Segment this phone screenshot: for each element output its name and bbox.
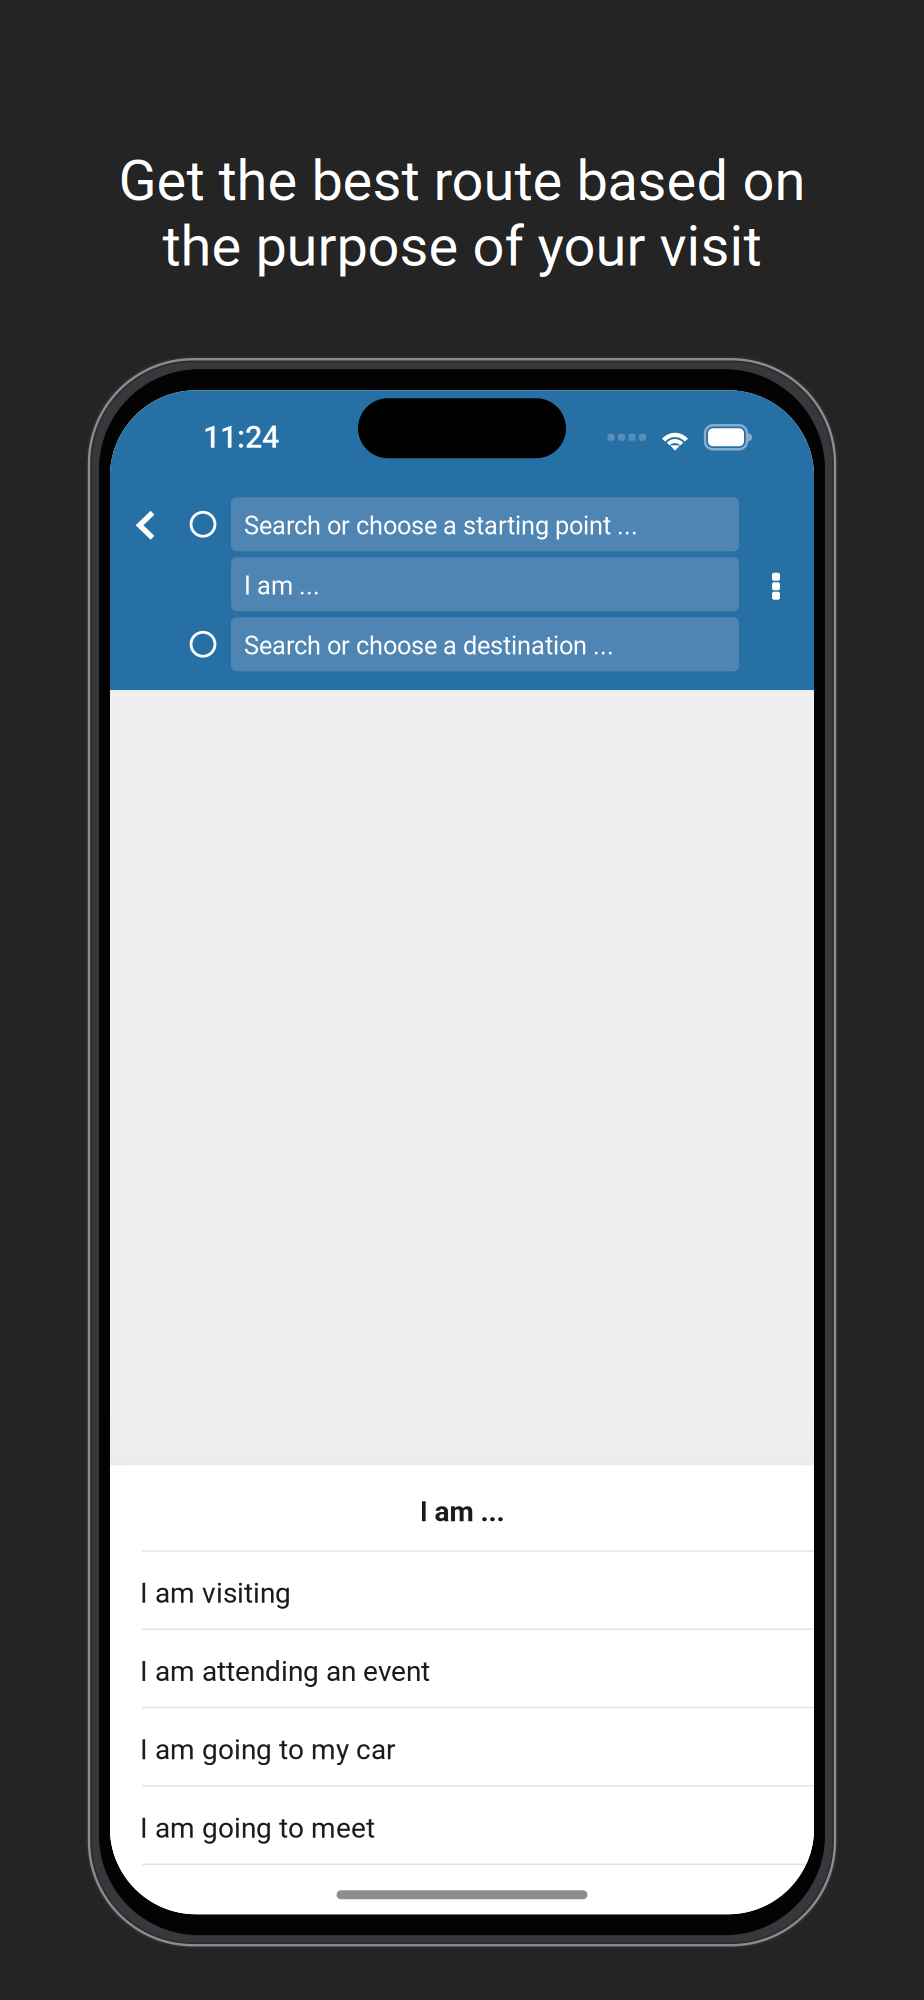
button[interactable]: I am attending an event — [110, 1630, 814, 1707]
button[interactable]: Search or choose a destination ... — [231, 617, 739, 671]
staticText: I am visiting — [140, 1577, 291, 1610]
staticText: the purpose of your visit — [162, 214, 761, 279]
button[interactable]: I am ... — [231, 557, 739, 611]
button[interactable]: Use current location as destination — [173, 623, 215, 665]
staticText: I am going to my car — [140, 1733, 395, 1766]
button[interactable]: I am visiting — [110, 1552, 814, 1628]
staticText: I am ... — [419, 1495, 504, 1528]
staticText: Search or choose a destination ... — [244, 631, 614, 661]
button[interactable]: Search or choose a starting point ... — [231, 497, 739, 551]
button[interactable]: I am going to my car — [110, 1708, 814, 1785]
button[interactable]: More options — [758, 498, 814, 670]
button[interactable]: Use current location as starting point — [173, 503, 215, 545]
staticText: I am going to meet — [140, 1812, 375, 1844]
staticText: Get the best route based on — [118, 148, 805, 214]
staticText: I am attending an event — [140, 1655, 430, 1688]
staticText: Search or choose a starting point ... — [244, 511, 638, 541]
button[interactable]: I am going to meet — [110, 1787, 814, 1863]
staticText: I am ... — [244, 571, 320, 601]
button[interactable]: Back — [119, 498, 173, 552]
staticText: 11:24 — [203, 419, 279, 455]
